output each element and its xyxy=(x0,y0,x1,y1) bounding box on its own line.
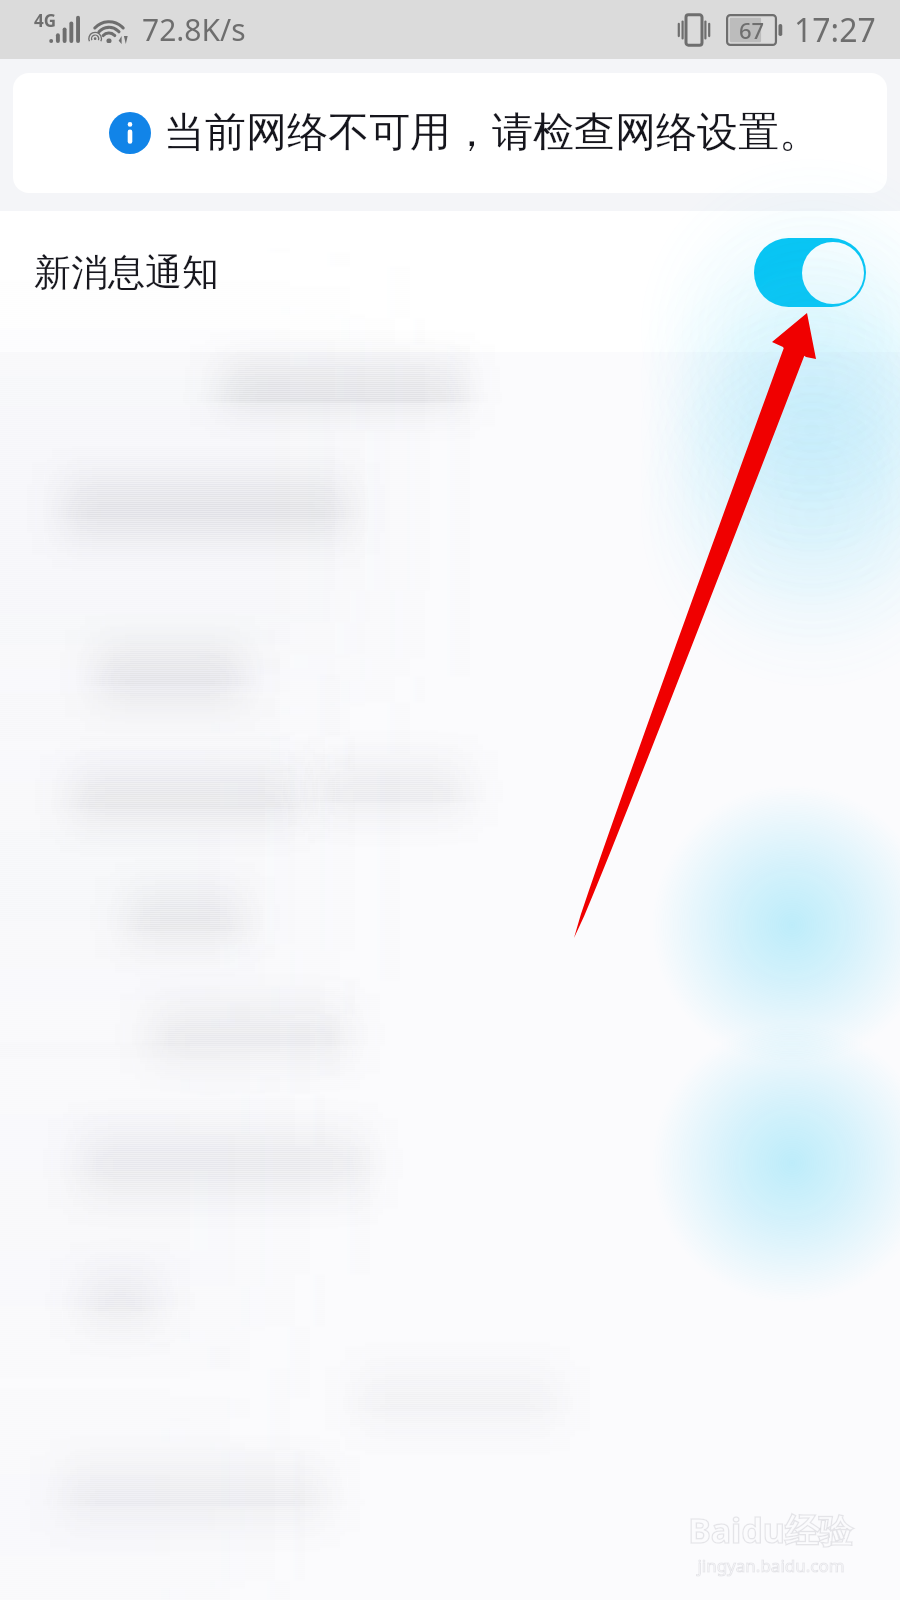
staticText: 当前网络不可用，请检查网络设置。 xyxy=(164,107,820,159)
staticText: 67 xyxy=(739,15,765,45)
staticText: jingyan.baidu.com xyxy=(697,1554,845,1577)
button[interactable]: New message notifications toggle xyxy=(754,238,866,307)
button[interactable]: 新消息通知 xyxy=(0,211,900,334)
button[interactable]: 当前网络不可用，请检查网络设置。 xyxy=(13,73,887,193)
staticText: 4G xyxy=(34,9,57,32)
staticText: Baidu经验 xyxy=(688,1507,853,1553)
staticText: 72.8K/s xyxy=(142,9,246,50)
staticText: 新消息通知 xyxy=(34,249,219,296)
staticText: 17:27 xyxy=(794,8,876,52)
